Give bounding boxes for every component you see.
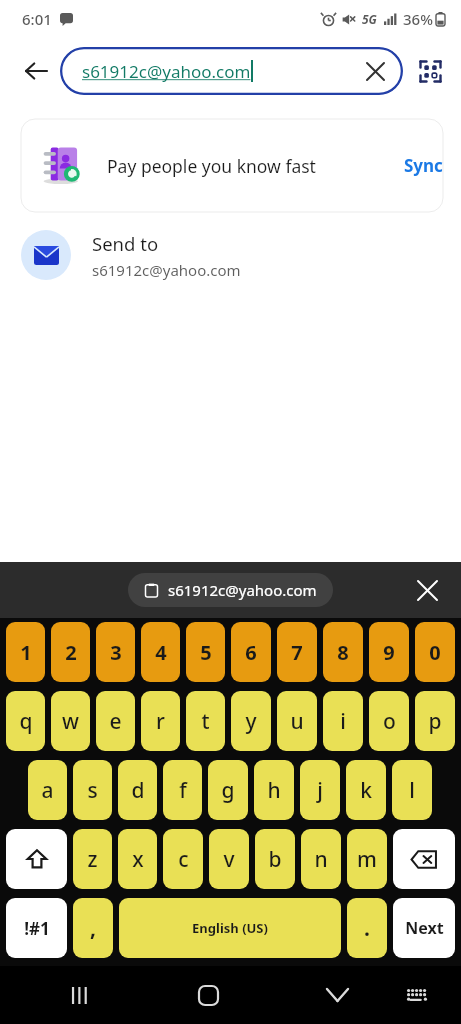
button[interactable]: s61912c@yahoo.com	[128, 573, 333, 607]
button[interactable]: l	[392, 760, 432, 820]
button[interactable]: 7	[277, 622, 317, 682]
button[interactable]: Change keyboard	[395, 973, 439, 1017]
button[interactable]: j	[300, 760, 340, 820]
staticText: y	[245, 707, 257, 736]
staticText: 6:01	[22, 9, 52, 29]
button[interactable]: Clear text	[355, 51, 395, 91]
button[interactable]: v	[209, 829, 249, 889]
button[interactable]: c	[163, 829, 203, 889]
button[interactable]: m	[347, 829, 387, 889]
staticText: e	[109, 707, 122, 736]
staticText: 3	[110, 639, 122, 666]
staticText: x	[132, 845, 144, 874]
staticText: t	[201, 707, 210, 736]
staticText: s61912c@yahoo.com	[168, 580, 317, 600]
button[interactable]: z	[73, 829, 112, 889]
button[interactable]: n	[301, 829, 341, 889]
button[interactable]: Shift	[6, 829, 67, 889]
button[interactable]: 8	[323, 622, 363, 682]
button[interactable]: Recent apps	[55, 971, 103, 1019]
button[interactable]: 0	[415, 622, 455, 682]
button[interactable]: y	[231, 691, 271, 751]
staticText: 7	[291, 639, 303, 666]
button[interactable]: .	[347, 898, 387, 958]
staticText: v	[223, 845, 235, 874]
button[interactable]: Backspace	[393, 829, 455, 889]
staticText: s61912c@yahoo.com	[82, 60, 251, 83]
staticText: r	[156, 707, 165, 736]
staticText: .	[364, 914, 370, 943]
staticText: j	[317, 776, 323, 805]
button[interactable]: f	[163, 760, 202, 820]
button[interactable]: x	[118, 829, 157, 889]
staticText: m	[357, 845, 377, 874]
staticText: q	[19, 707, 33, 736]
staticText: Next	[405, 917, 444, 939]
staticText: 0	[429, 639, 441, 666]
button[interactable]: w	[51, 691, 90, 751]
button[interactable]: a	[28, 760, 67, 820]
staticText: 5G	[362, 11, 377, 27]
button[interactable]: 9	[369, 622, 409, 682]
staticText: z	[87, 845, 98, 874]
button[interactable]: h	[254, 760, 294, 820]
staticText: English (US)	[192, 919, 268, 937]
button[interactable]: d	[118, 760, 157, 820]
button[interactable]: u	[277, 691, 317, 751]
button[interactable]: s	[73, 760, 112, 820]
button[interactable]: Hide keyboard	[313, 971, 361, 1019]
button[interactable]: t	[186, 691, 225, 751]
staticText: o	[383, 707, 396, 736]
staticText: k	[360, 776, 372, 805]
button[interactable]: p	[415, 691, 455, 751]
staticText: 4	[155, 639, 167, 666]
button[interactable]: !#1	[6, 898, 67, 958]
staticText: f	[179, 776, 187, 805]
staticText: l	[409, 776, 415, 805]
button[interactable]: English (US)	[119, 898, 341, 958]
staticText: ,	[90, 914, 96, 943]
button[interactable]: 1	[6, 622, 45, 682]
staticText: i	[340, 707, 346, 736]
staticText: n	[314, 845, 328, 874]
staticText: d	[131, 776, 145, 805]
button[interactable]: s61912c@yahoo.com	[60, 47, 403, 95]
staticText: s	[87, 776, 98, 805]
staticText: !#1	[24, 917, 50, 940]
button[interactable]: Sync	[404, 154, 443, 177]
button[interactable]: e	[96, 691, 135, 751]
staticText: b	[268, 845, 282, 874]
button[interactable]: 5	[186, 622, 225, 682]
staticText: h	[267, 776, 281, 805]
staticText: Pay people you know fast	[107, 154, 396, 178]
button[interactable]: Send to	[0, 212, 461, 298]
button[interactable]: q	[6, 691, 45, 751]
button[interactable]: 2	[51, 622, 90, 682]
button[interactable]: 6	[231, 622, 271, 682]
button[interactable]: Pay people you know fast	[21, 119, 443, 212]
staticText: g	[221, 776, 235, 805]
staticText: 8	[337, 639, 349, 666]
button[interactable]: Back	[12, 47, 60, 95]
button[interactable]: Next	[393, 898, 455, 958]
button[interactable]: k	[346, 760, 386, 820]
staticText: w	[62, 707, 79, 736]
staticText: 6	[245, 639, 257, 666]
button[interactable]: Close clipboard suggestion	[407, 570, 447, 610]
staticText: a	[41, 776, 54, 805]
button[interactable]: o	[369, 691, 409, 751]
staticText: s61912c@yahoo.com	[92, 260, 241, 280]
button[interactable]: 3	[96, 622, 135, 682]
staticText: 5	[200, 639, 212, 666]
button[interactable]: ,	[73, 898, 113, 958]
button[interactable]: r	[141, 691, 180, 751]
button[interactable]: b	[255, 829, 295, 889]
staticText: 2	[65, 639, 77, 666]
staticText: 9	[383, 639, 395, 666]
button[interactable]: g	[208, 760, 248, 820]
button[interactable]: Scan QR code	[407, 48, 453, 94]
button[interactable]: i	[323, 691, 363, 751]
button[interactable]: 4	[141, 622, 180, 682]
button[interactable]: Home	[184, 971, 232, 1019]
staticText: u	[290, 707, 304, 736]
